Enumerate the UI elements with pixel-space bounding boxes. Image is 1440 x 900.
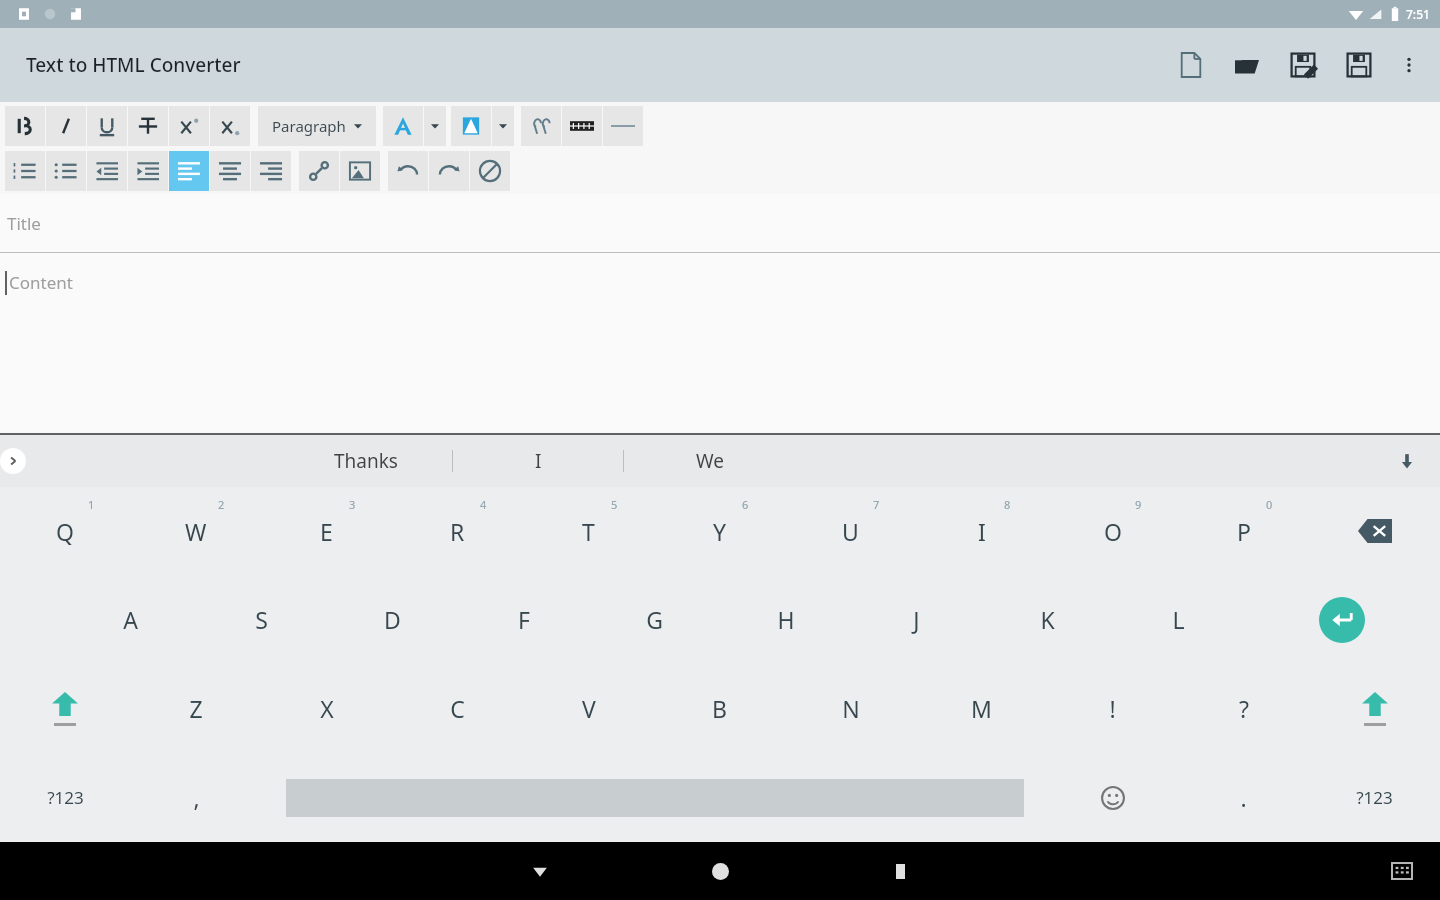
- button[interactable]: Undo: [388, 151, 428, 191]
- button[interactable]: !: [1047, 664, 1178, 753]
- button[interactable]: M: [916, 664, 1047, 753]
- staticText: D: [384, 604, 401, 635]
- button[interactable]: Clear formatting: [470, 151, 510, 191]
- button[interactable]: Redo: [429, 151, 469, 191]
- button[interactable]: T: [523, 487, 654, 575]
- button[interactable]: A: [65, 575, 196, 664]
- staticText: A: [123, 604, 138, 635]
- staticText: 8: [1004, 497, 1011, 512]
- button[interactable]: ?123: [0, 753, 131, 842]
- button[interactable]: Shift: [1309, 664, 1440, 753]
- button[interactable]: Superscript: [169, 106, 209, 146]
- button[interactable]: Thanks: [280, 435, 452, 487]
- button[interactable]: Quote: [521, 106, 561, 146]
- button[interactable]: S: [196, 575, 327, 664]
- button[interactable]: Text colour options: [424, 106, 446, 146]
- button[interactable]: Align right: [251, 151, 291, 191]
- button[interactable]: I: [916, 487, 1047, 575]
- button[interactable]: Align centre: [210, 151, 250, 191]
- staticText: 1: [88, 497, 95, 512]
- button[interactable]: V: [523, 664, 654, 753]
- button[interactable]: P: [1178, 487, 1309, 575]
- button[interactable]: Italic: [46, 106, 86, 146]
- staticText: V: [582, 693, 596, 724]
- button[interactable]: Underline: [87, 106, 127, 146]
- staticText: 7:51: [1406, 6, 1430, 22]
- button[interactable]: Title: [0, 194, 1440, 252]
- button[interactable]: Hide keyboard: [1392, 446, 1422, 476]
- button[interactable]: Bold: [5, 106, 45, 146]
- button[interactable]: J: [851, 575, 982, 664]
- button[interactable]: X: [261, 664, 392, 753]
- button[interactable]: E: [261, 487, 392, 575]
- button[interactable]: Align left: [169, 151, 209, 191]
- staticText: W: [185, 516, 207, 547]
- button[interactable]: W: [130, 487, 261, 575]
- button[interactable]: Insert link: [299, 151, 339, 191]
- button[interactable]: U: [785, 487, 916, 575]
- button[interactable]: Insert image: [340, 151, 380, 191]
- staticText: P: [1237, 516, 1251, 547]
- staticText: U: [842, 516, 859, 547]
- staticText: O: [1104, 516, 1122, 547]
- staticText: J: [913, 604, 920, 635]
- button[interactable]: L: [1113, 575, 1244, 664]
- button[interactable]: Text colour: [383, 106, 423, 146]
- button[interactable]: ?123: [1309, 753, 1440, 842]
- button[interactable]: Back: [510, 842, 570, 900]
- button[interactable]: Q: [0, 487, 130, 575]
- button[interactable]: R: [392, 487, 523, 575]
- button[interactable]: Home: [690, 842, 750, 900]
- button[interactable]: Code block: [562, 106, 602, 146]
- button[interactable]: Highlight colour: [451, 106, 491, 146]
- button[interactable]: N: [785, 664, 916, 753]
- button[interactable]: Switch keyboard: [1382, 851, 1422, 891]
- button[interactable]: .: [1178, 753, 1309, 842]
- button[interactable]: Bulleted list: [46, 151, 86, 191]
- staticText: Title: [7, 212, 41, 235]
- button[interactable]: Horizontal rule: [603, 106, 643, 146]
- button[interactable]: K: [982, 575, 1113, 664]
- button[interactable]: Highlight colour options: [492, 106, 514, 146]
- button[interactable]: Emoji: [1047, 753, 1178, 842]
- button[interactable]: Y: [654, 487, 785, 575]
- button[interactable]: ?: [1178, 664, 1309, 753]
- staticText: K: [1040, 604, 1055, 635]
- button[interactable]: Increase indent: [128, 151, 168, 191]
- button[interactable]: Enter: [1244, 575, 1440, 664]
- button[interactable]: H: [720, 575, 851, 664]
- button[interactable]: New file: [1172, 46, 1210, 84]
- button[interactable]: Save as: [1284, 46, 1322, 84]
- button[interactable]: Save: [1340, 46, 1378, 84]
- button[interactable]: Subscript: [210, 106, 250, 146]
- staticText: Paragraph: [272, 116, 346, 136]
- button[interactable]: Recent apps: [870, 842, 930, 900]
- button[interactable]: Open file: [1228, 46, 1266, 84]
- button[interactable]: More options: [1392, 48, 1426, 82]
- button[interactable]: Space: [262, 753, 1047, 842]
- button[interactable]: I: [453, 435, 623, 487]
- staticText: 6: [742, 497, 749, 512]
- button[interactable]: We: [624, 435, 796, 487]
- button[interactable]: ,: [131, 753, 262, 842]
- button[interactable]: Decrease indent: [87, 151, 127, 191]
- button[interactable]: Backspace: [1309, 487, 1440, 575]
- staticText: F: [518, 604, 530, 635]
- button[interactable]: Content: [0, 253, 1440, 433]
- button[interactable]: Paragraph: [258, 106, 376, 146]
- button[interactable]: Shift: [0, 664, 130, 753]
- button[interactable]: Strikethrough: [128, 106, 168, 146]
- button[interactable]: D: [327, 575, 458, 664]
- staticText: 4: [480, 497, 487, 512]
- button[interactable]: G: [589, 575, 720, 664]
- button[interactable]: Expand toolbar: [0, 448, 26, 474]
- button[interactable]: Numbered list: [5, 151, 45, 191]
- button[interactable]: C: [392, 664, 523, 753]
- button[interactable]: B: [654, 664, 785, 753]
- button[interactable]: O: [1047, 487, 1178, 575]
- button[interactable]: Z: [130, 664, 261, 753]
- button[interactable]: F: [458, 575, 589, 664]
- staticText: I: [978, 516, 986, 547]
- staticText: Y: [713, 516, 727, 547]
- staticText: I: [535, 448, 542, 474]
